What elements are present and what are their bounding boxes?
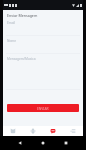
button[interactable]: ENVIAR [7, 104, 79, 112]
button[interactable]: Back [15, 138, 24, 147]
staticText: Enviar Mensagem [7, 13, 38, 18]
button[interactable] [3, 53, 83, 90]
staticText: Nome [7, 39, 17, 43]
button[interactable]: More [63, 126, 83, 136]
staticText: Email [7, 21, 16, 25]
button[interactable] [3, 17, 83, 36]
button[interactable]: Explore [23, 126, 43, 136]
button[interactable]: Home [3, 126, 23, 136]
button[interactable] [3, 35, 83, 54]
button[interactable]: Home [38, 138, 47, 147]
button[interactable]: Messages [43, 126, 63, 136]
staticText: ENVIAR [37, 106, 49, 110]
staticText: Mensagem/Musica [7, 57, 36, 61]
button[interactable]: Recents [61, 138, 70, 147]
